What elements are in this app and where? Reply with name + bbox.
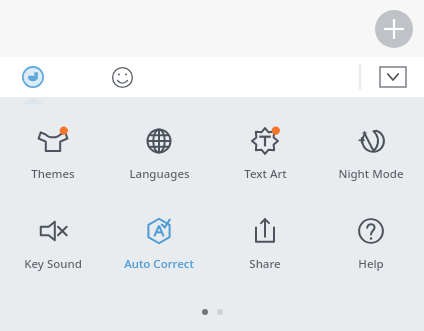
staticText: Text Art [244,166,287,182]
staticText: Themes [31,166,75,182]
button[interactable]: Night Mode [318,123,424,182]
staticText: Languages [129,166,190,182]
staticText: Night Mode [338,166,404,182]
button[interactable]: Key Sound [0,213,106,272]
button[interactable]: Share [212,213,318,272]
button[interactable]: Languages [106,123,212,182]
staticText: Help [358,256,384,272]
button[interactable]: Auto Correct [106,213,212,272]
button[interactable]: Keyboard settings [13,57,53,97]
button[interactable]: Help [318,213,424,272]
staticText: Key Sound [24,256,82,272]
button[interactable]: Text Art [212,123,318,182]
staticText: Share [249,256,281,272]
button[interactable]: Emoji [102,57,142,97]
button[interactable]: Hide keyboard [376,60,410,94]
staticText: Auto Correct [124,256,194,272]
button[interactable]: Add [375,10,413,48]
button[interactable]: Themes [0,123,106,182]
